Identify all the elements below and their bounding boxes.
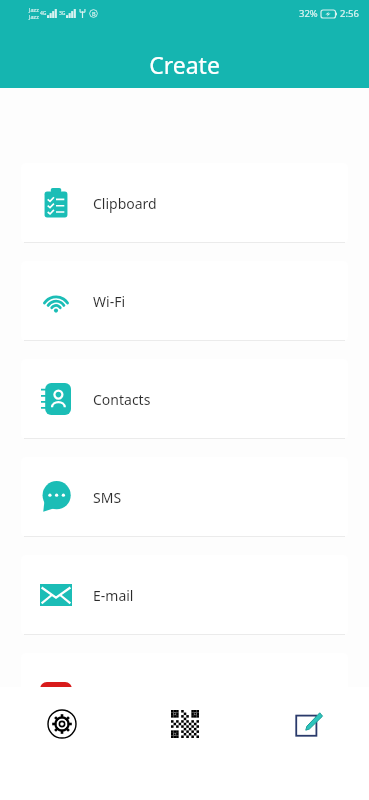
button[interactable]: YouTube: [21, 653, 348, 733]
button[interactable]: Settings: [0, 687, 123, 761]
button[interactable]: Create: [246, 687, 369, 761]
button[interactable]: Scan QR code: [123, 687, 246, 761]
staticText: B: [92, 10, 96, 17]
staticText: 3G: [59, 10, 66, 17]
staticText: Jazz: [29, 13, 39, 20]
staticText: Create: [149, 49, 220, 80]
staticText: SMS: [93, 488, 122, 507]
button[interactable]: Contacts: [21, 359, 348, 439]
button[interactable]: E-mail: [21, 555, 348, 635]
staticText: Jazz: [29, 6, 39, 13]
staticText: Clipboard: [93, 194, 157, 213]
button[interactable]: SMS: [21, 457, 348, 537]
staticText: E-mail: [93, 586, 134, 605]
staticText: Contacts: [93, 390, 151, 409]
staticText: Wi-Fi: [93, 292, 126, 311]
staticText: 2:56: [340, 7, 359, 20]
button[interactable]: Wi-Fi: [21, 261, 348, 341]
staticText: 32%: [299, 7, 318, 20]
button[interactable]: Clipboard: [21, 163, 348, 243]
staticText: 4G: [40, 10, 47, 17]
